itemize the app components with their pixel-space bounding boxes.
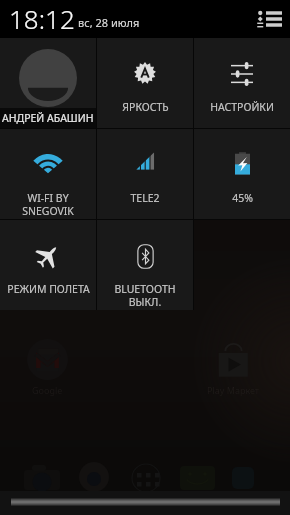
button[interactable]: ЯРКОСТЬ	[97, 38, 193, 128]
button[interactable]: РЕЖИМ ПОЛЕТА	[0, 220, 96, 310]
staticText: BLUETOOTH ВЫКЛ.	[114, 282, 176, 309]
button[interactable]: TELE2	[97, 129, 193, 219]
button[interactable]: Notifications	[253, 3, 285, 35]
button[interactable]: 45%	[194, 129, 290, 219]
staticText: 45%	[232, 191, 253, 205]
staticText: вс, 28 июля	[78, 15, 140, 30]
staticText: Play Маркет	[207, 384, 260, 396]
staticText: ЯРКОСТЬ	[122, 100, 169, 114]
staticText: РЕЖИМ ПОЛЕТА	[7, 282, 90, 296]
button[interactable]: BLUETOOTH ВЫКЛ.	[97, 220, 193, 310]
staticText: Google	[32, 384, 63, 396]
button[interactable]: НАСТРОЙКИ	[194, 38, 290, 128]
button[interactable]: WI-FI BY SNEGOVIK	[0, 129, 96, 219]
staticText: АНДРЕЙ АБАШИН	[2, 111, 94, 125]
staticText: TELE2	[130, 191, 160, 205]
staticText: WI-FI BY SNEGOVIK	[22, 191, 74, 218]
staticText: НАСТРОЙКИ	[210, 100, 274, 114]
staticText: 18:12	[9, 1, 75, 36]
button[interactable]: АНДРЕЙ АБАШИН	[0, 38, 96, 128]
